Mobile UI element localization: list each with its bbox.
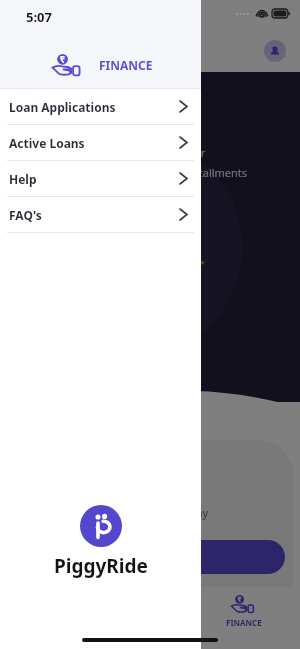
staticText: Loan Applications [9, 99, 116, 115]
staticText: Pay the fee of your institute on your [20, 145, 206, 160]
staticText: FINANCE [99, 57, 153, 73]
button[interactable]: Profile [264, 40, 286, 62]
staticText: behalf and pay in easy monthly installme… [20, 165, 248, 180]
button[interactable]: FAQ's [0, 197, 201, 233]
button[interactable]: Apply Now [20, 540, 285, 574]
staticText: 5:07 [26, 8, 52, 26]
button[interactable]: Active Loans [0, 125, 201, 161]
button[interactable]: FINANCE [52, 54, 153, 76]
staticText: Active Loans [9, 135, 85, 151]
staticText: Help [9, 171, 37, 187]
button[interactable]: Help [0, 161, 201, 197]
staticText: Fee" to know your limit to pay [20, 524, 174, 539]
staticText: PiggyRide [54, 553, 148, 579]
staticText: FINANCE [226, 617, 262, 628]
button[interactable]: Loan Applications [0, 89, 201, 125]
staticText: Go to Finance tab & select "Academy [20, 505, 209, 520]
staticText: Apply Now [120, 549, 185, 565]
staticText: FAQ's [9, 207, 42, 223]
button[interactable]: FINANCE [222, 591, 266, 632]
